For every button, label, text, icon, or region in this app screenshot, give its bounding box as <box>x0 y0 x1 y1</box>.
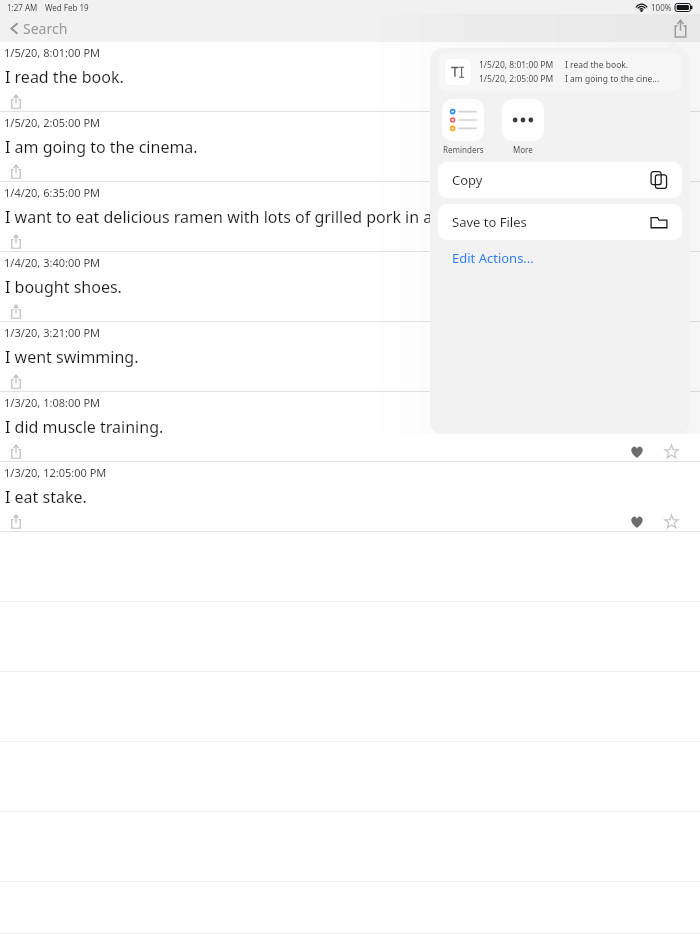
staticText: 1/4/20, 3:40:00 PM <box>4 255 101 270</box>
staticText: Search <box>23 19 68 38</box>
staticText: I eat stake. <box>5 486 87 508</box>
button[interactable]: 1/3/20, 1:08:00 PM <box>0 392 700 462</box>
button[interactable]: Star <box>664 514 679 529</box>
button[interactable]: Save to Files <box>438 204 682 240</box>
staticText: 1/3/20, 3:21:00 PM <box>4 325 101 340</box>
staticText: 1/5/20, 2:05:00 PM <box>479 73 554 85</box>
button[interactable]: Share note <box>10 304 22 319</box>
button[interactable]: Edit Actions... <box>452 249 534 267</box>
button[interactable]: 1/4/20, 3:40:00 PM <box>0 252 700 322</box>
button[interactable]: 1/3/20, 3:21:00 PM <box>0 322 700 392</box>
button[interactable]: Copy <box>438 162 682 198</box>
staticText: More <box>513 144 533 155</box>
staticText: I read the book. <box>565 59 629 71</box>
button[interactable]: Share note <box>10 444 22 459</box>
staticText: 1/3/20, 12:05:00 PM <box>4 465 107 480</box>
button[interactable]: Favorite <box>630 445 644 459</box>
staticText: I am going to the cinema. <box>5 136 198 158</box>
button[interactable]: Reminders <box>439 99 487 155</box>
button[interactable]: 1/5/20, 8:01:00 PM <box>438 53 682 91</box>
button[interactable]: Star <box>664 444 679 459</box>
button[interactable]: 1/3/20, 12:05:00 PM <box>0 462 700 532</box>
staticText: I did muscle training. <box>5 416 164 438</box>
staticText: Save to Files <box>452 213 527 231</box>
staticText: I went swimming. <box>5 346 139 368</box>
staticText: 1/3/20, 1:08:00 PM <box>4 395 101 410</box>
staticText: 1/4/20, 6:35:00 PM <box>4 185 101 200</box>
staticText: I am going to the cine... <box>565 73 660 85</box>
button[interactable]: 1/5/20, 8:01:00 PM <box>0 42 700 112</box>
staticText: 100% <box>651 2 672 13</box>
button[interactable]: Share note <box>10 514 22 529</box>
staticText: 1:27 AM <box>7 2 38 13</box>
button[interactable]: Share <box>670 16 691 41</box>
staticText: 1/5/20, 8:01:00 PM <box>479 59 554 71</box>
button[interactable]: Share note <box>10 164 22 179</box>
staticText: Reminders <box>443 144 484 155</box>
staticText: Copy <box>452 171 483 189</box>
button[interactable]: More <box>499 99 547 155</box>
staticText: I read the book. <box>5 66 124 88</box>
staticText: 1/5/20, 8:01:00 PM <box>4 45 101 60</box>
button[interactable]: 1/4/20, 6:35:00 PM <box>0 182 700 252</box>
button[interactable]: Favorite <box>630 515 644 529</box>
button[interactable]: Search <box>6 16 72 41</box>
staticText: I bought shoes. <box>5 276 122 298</box>
button[interactable]: Share note <box>10 234 22 249</box>
button[interactable]: Share note <box>10 94 22 109</box>
staticText: Wed Feb 19 <box>45 2 89 13</box>
button[interactable]: 1/5/20, 2:05:00 PM <box>0 112 700 182</box>
staticText: I want to eat delicious ramen with lots … <box>5 206 515 228</box>
staticText: 1/5/20, 2:05:00 PM <box>4 115 101 130</box>
button[interactable]: Share note <box>10 374 22 389</box>
